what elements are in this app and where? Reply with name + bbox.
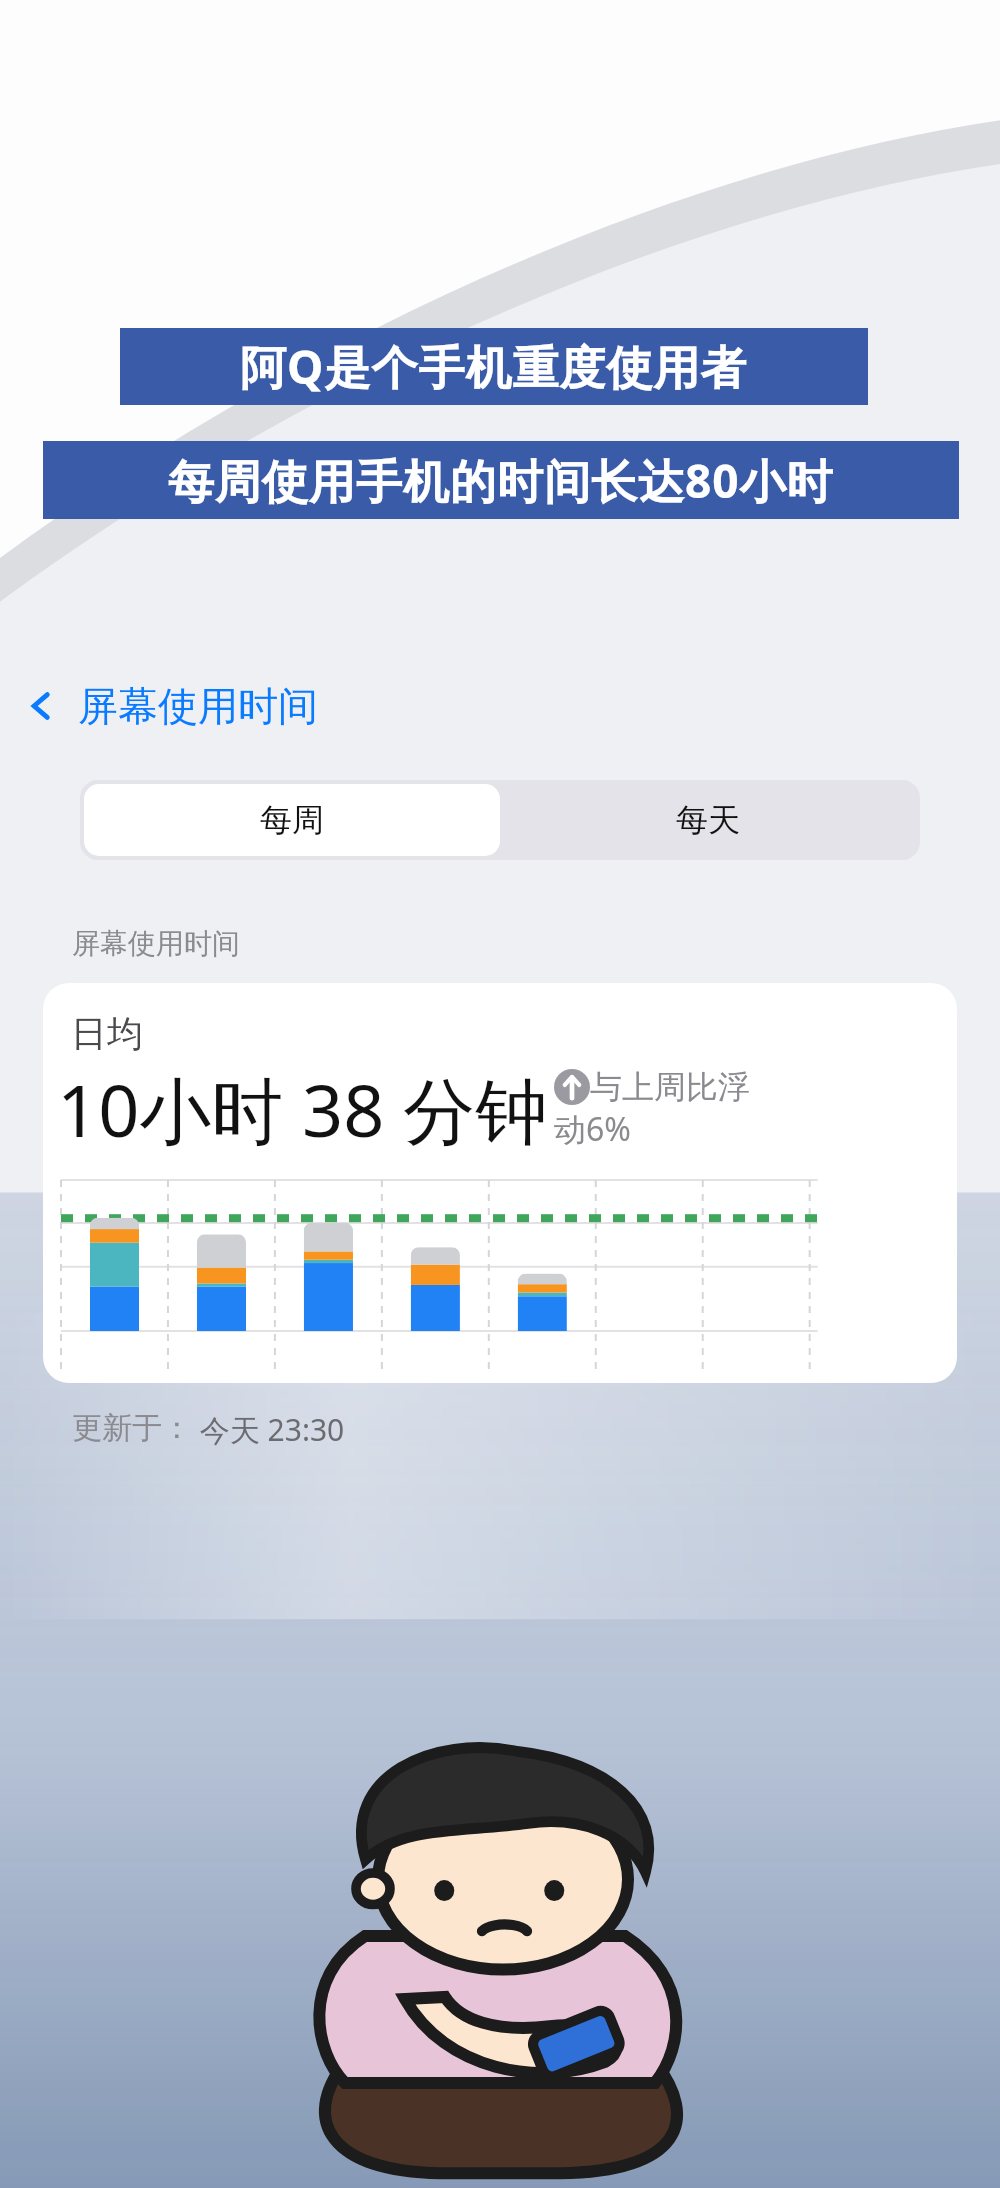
staticText: 每周 xyxy=(260,800,324,840)
button[interactable]: 每天 xyxy=(500,784,916,856)
staticText: 每天 xyxy=(676,800,740,840)
staticText: 屏幕使用时间 xyxy=(72,926,240,961)
staticText: 更新于： xyxy=(72,1409,192,1447)
staticText: 日均 xyxy=(71,1011,143,1056)
staticText: 动6% xyxy=(554,1107,631,1151)
button[interactable]: Back xyxy=(20,674,318,738)
staticText: 与上周比浮 xyxy=(590,1067,750,1107)
staticText: 每周使用手机的时间长达80小时 xyxy=(168,449,834,512)
button[interactable]: 每周 xyxy=(84,784,500,856)
button[interactable]: 日均 xyxy=(43,983,957,1383)
staticText: 今天 23:30 xyxy=(192,1409,345,1450)
other: Back xyxy=(20,684,64,728)
staticText: 阿Q是个手机重度使用者 xyxy=(240,335,748,398)
staticText: 10小时 38 分钟 xyxy=(57,1060,548,1158)
staticText: 屏幕使用时间 xyxy=(78,681,318,731)
